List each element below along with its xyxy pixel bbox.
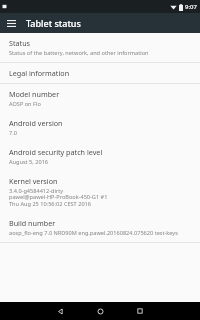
button[interactable]: Legal information bbox=[0, 63, 200, 83]
button[interactable]: Open navigation drawer bbox=[4, 16, 18, 30]
staticText: Tablet status bbox=[26, 17, 81, 29]
button[interactable]: Android security patch level bbox=[0, 142, 200, 171]
button[interactable]: Home bbox=[80, 302, 120, 320]
button[interactable]: Build number bbox=[0, 213, 200, 242]
staticText: August 5, 2016 bbox=[9, 158, 49, 166]
staticText: Status of the battery, network, and othe… bbox=[9, 49, 149, 57]
staticText: aosp_flo-eng 7.0 NRD90M eng.pawel.201608… bbox=[9, 229, 178, 237]
staticText: 3.4.0-g4584412-dirty pawel@pawel-HP-ProB… bbox=[9, 187, 108, 208]
button[interactable]: Status bbox=[0, 33, 200, 62]
button[interactable]: Kernel version bbox=[0, 171, 200, 213]
button[interactable]: Android version bbox=[0, 113, 200, 142]
staticText: Status bbox=[9, 38, 31, 48]
staticText: Kernel version bbox=[9, 176, 58, 186]
staticText: AOSP on Flo bbox=[9, 100, 41, 108]
button[interactable]: Model number bbox=[0, 84, 200, 113]
staticText: Model number bbox=[9, 89, 60, 99]
button[interactable]: Back bbox=[40, 302, 80, 320]
staticText: Build number bbox=[9, 218, 56, 228]
button[interactable]: Recent apps bbox=[120, 302, 160, 320]
staticText: 9:07 bbox=[185, 3, 197, 11]
staticText: Android security patch level bbox=[9, 147, 103, 157]
staticText: Android version bbox=[9, 118, 63, 128]
staticText: 7.0 bbox=[9, 129, 17, 137]
staticText: Legal information bbox=[9, 68, 70, 78]
